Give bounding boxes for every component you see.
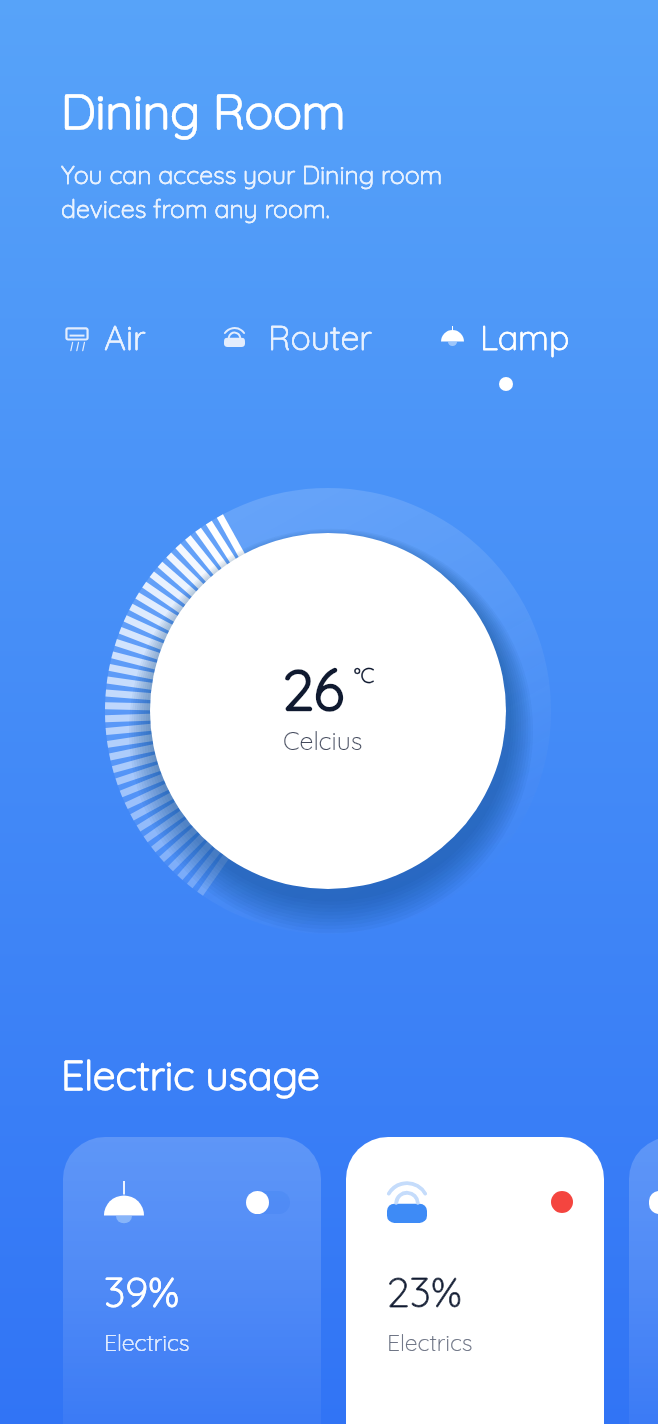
staticText: 23% <box>387 1266 463 1317</box>
staticText: Air <box>104 316 146 359</box>
staticText: You can access your Dining room devices … <box>61 159 443 224</box>
staticText: 23% <box>387 1266 463 1317</box>
staticText: Router <box>268 316 372 359</box>
staticText: Lamp <box>480 316 570 359</box>
staticText: Electrics <box>104 1328 190 1357</box>
staticText: 26 <box>283 654 344 724</box>
button[interactable]: Toggle lamp <box>246 1191 290 1214</box>
staticText: Electrics <box>387 1328 473 1357</box>
staticText: °C <box>354 662 375 688</box>
staticText: Router <box>268 316 372 359</box>
staticText: 26 <box>283 654 344 724</box>
staticText: Electrics <box>104 1328 190 1357</box>
staticText: Electric usage <box>61 1049 320 1100</box>
button[interactable]: Air <box>66 316 146 359</box>
button[interactable]: Lamp <box>441 316 570 359</box>
staticText: °C <box>354 662 375 688</box>
staticText: 39% <box>104 1266 180 1317</box>
staticText: 39% <box>104 1266 180 1317</box>
button[interactable]: Toggle lamp <box>63 1137 321 1424</box>
button[interactable]: Router status <box>346 1137 604 1424</box>
staticText: Celcius <box>283 725 363 756</box>
button[interactable]: Router status <box>551 1191 573 1213</box>
staticText: Lamp <box>480 316 570 359</box>
staticText: Air <box>104 316 146 359</box>
button[interactable]: Router <box>224 316 372 359</box>
staticText: You can access your Dining room devices … <box>61 159 443 224</box>
staticText: Celcius <box>283 725 363 756</box>
staticText: Dining Room <box>61 81 346 141</box>
staticText: Dining Room <box>61 81 346 141</box>
button[interactable]: Toggle lamp <box>629 1137 658 1424</box>
staticText: Electrics <box>387 1328 473 1357</box>
staticText: Electric usage <box>61 1049 320 1100</box>
